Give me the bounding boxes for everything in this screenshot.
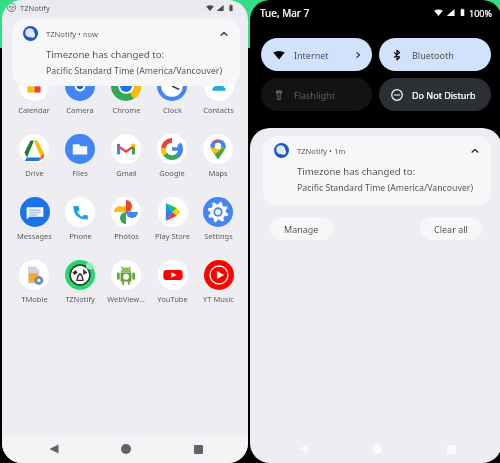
staticText: TZNotify • now [46, 29, 99, 39]
staticText: Contacts [203, 105, 234, 115]
button[interactable]: Back [17, 435, 90, 463]
button[interactable]: Back [265, 435, 340, 463]
button[interactable]: YouTube [149, 260, 195, 323]
staticText: Photos [114, 231, 139, 241]
staticText: Files [72, 168, 88, 178]
button[interactable]: Collapse [466, 142, 483, 159]
button[interactable]: WebView… [103, 260, 149, 323]
staticText: Settings [204, 231, 233, 241]
staticText: Do Not Disturb [412, 89, 476, 101]
button[interactable]: Recents [162, 435, 234, 463]
button[interactable]: Flashlight [261, 78, 372, 111]
staticText: Camera [66, 105, 94, 115]
button[interactable]: Clock [149, 71, 195, 134]
button[interactable]: Drive [11, 134, 57, 197]
button[interactable]: Clear all [420, 217, 482, 240]
button[interactable]: Internet [261, 38, 372, 71]
staticText: Pacific Standard Time (America/Vancouver… [297, 182, 474, 194]
staticText: Timezone has changed to: [297, 165, 416, 178]
button[interactable]: Camera [57, 71, 103, 134]
staticText: Chrome [112, 105, 141, 115]
button[interactable]: TZNotify • now [12, 19, 240, 86]
button[interactable]: TMoble [11, 260, 57, 323]
staticText: Phone [69, 231, 92, 241]
button[interactable]: Play Store [149, 197, 195, 260]
button[interactable]: Settings [195, 197, 241, 260]
staticText: Maps [208, 168, 228, 178]
button[interactable]: Gmail [103, 134, 149, 197]
button[interactable]: Collapse [215, 25, 232, 42]
staticText: Google [159, 168, 185, 178]
staticText: Timezone has changed to: [46, 48, 165, 61]
staticText: YouTube [157, 294, 188, 304]
button[interactable]: Manage [270, 217, 333, 240]
staticText: Bluetooth [412, 49, 454, 61]
button[interactable]: Photos [103, 197, 149, 260]
staticText: YT Music [203, 294, 234, 304]
button[interactable]: TZNotify [57, 260, 103, 323]
button[interactable]: Chrome [103, 71, 149, 134]
staticText: Play Store [155, 231, 190, 241]
staticText: Internet [294, 49, 329, 61]
staticText: Drive [25, 168, 44, 178]
button[interactable]: Files [57, 134, 103, 197]
staticText: Tue, Mar 7 [260, 6, 310, 20]
button[interactable]: TZNotify • 1m [263, 136, 491, 206]
button[interactable]: Bluetooth [379, 38, 491, 71]
staticText: TMoble [21, 294, 48, 304]
staticText: Calendar [18, 105, 50, 115]
staticText: Gmail [116, 168, 137, 178]
staticText: TZNotify [20, 3, 50, 13]
button[interactable]: Messages [11, 197, 57, 260]
button[interactable]: YT Music [195, 260, 241, 323]
button[interactable]: Calendar [11, 71, 57, 134]
button[interactable]: Maps [195, 134, 241, 197]
staticText: Flashlight [294, 89, 335, 101]
staticText: Messages [17, 231, 52, 241]
staticText: Clock [163, 105, 182, 115]
staticText: TZNotify [65, 294, 95, 304]
staticText: Manage [284, 223, 319, 235]
staticText: WebView… [107, 294, 145, 304]
staticText: 100% [469, 7, 492, 19]
button[interactable]: Contacts [195, 71, 241, 134]
staticText: TZNotify • 1m [297, 146, 346, 156]
button[interactable]: Home [90, 435, 162, 463]
button[interactable]: Google [149, 134, 195, 197]
button[interactable]: Recents [414, 435, 488, 463]
button[interactable]: Phone [57, 197, 103, 260]
staticText: Pacific Standard Time (America/Vancouver… [46, 65, 223, 77]
button[interactable]: Do Not Disturb [379, 78, 491, 111]
staticText: Clear all [434, 223, 468, 235]
